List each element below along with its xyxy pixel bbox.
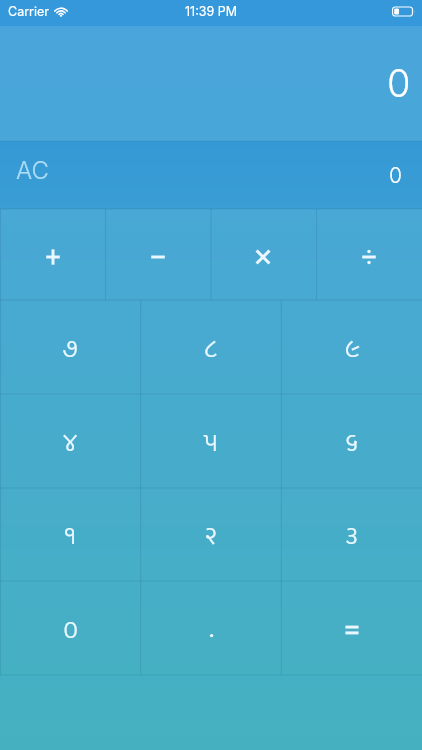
button[interactable]: AC: [0, 141, 422, 209]
button[interactable]: Divide: [316, 209, 422, 300]
button[interactable]: Four: [0, 394, 140, 488]
button[interactable]: Minus: [105, 209, 210, 300]
staticText: ૧: [64, 515, 76, 558]
staticText: ૩: [345, 515, 358, 558]
button[interactable]: Zero: [0, 581, 140, 675]
button[interactable]: Nine: [281, 300, 422, 394]
button[interactable]: Eight: [140, 300, 281, 394]
button[interactable]: Multiply: [210, 209, 316, 300]
staticText: AC: [16, 156, 49, 185]
button[interactable]: Plus: [0, 209, 105, 300]
button[interactable]: Decimal point: [140, 581, 281, 675]
staticText: Carrier: [8, 4, 49, 19]
staticText: ૬: [345, 422, 358, 465]
staticText: 0: [387, 60, 411, 106]
staticText: ૭: [62, 328, 78, 371]
staticText: 11:39 PM: [185, 4, 238, 19]
staticText: 0: [389, 163, 402, 188]
staticText: ૦: [63, 609, 78, 652]
staticText: ૮: [204, 328, 217, 371]
button[interactable]: Seven: [0, 300, 140, 394]
staticText: ૯: [344, 328, 360, 371]
button[interactable]: Two: [140, 488, 281, 581]
button[interactable]: One: [0, 488, 140, 581]
button[interactable]: Three: [281, 488, 422, 581]
button[interactable]: Six: [281, 394, 422, 488]
button[interactable]: Five: [140, 394, 281, 488]
button[interactable]: Equals: [281, 581, 422, 675]
staticText: ૫: [203, 422, 218, 465]
staticText: ૪: [63, 422, 77, 465]
staticText: ૨: [204, 515, 217, 558]
